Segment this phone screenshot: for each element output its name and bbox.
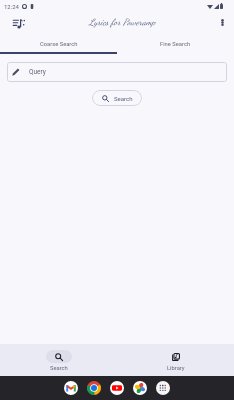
button[interactable]: Search bbox=[92, 90, 142, 106]
button[interactable]: Photos bbox=[133, 381, 147, 395]
button[interactable]: More options bbox=[212, 14, 232, 34]
staticText: Lyrics for Poweramp bbox=[89, 17, 156, 28]
button[interactable]: Gmail bbox=[64, 381, 78, 395]
button[interactable]: Library bbox=[117, 344, 234, 376]
button[interactable]: Chrome bbox=[87, 381, 101, 395]
staticText: Search bbox=[50, 365, 68, 372]
button[interactable]: Fine Search bbox=[117, 36, 234, 52]
staticText: Fine Search bbox=[160, 41, 191, 48]
button[interactable]: All apps bbox=[156, 381, 170, 395]
button[interactable]: Query bbox=[7, 62, 227, 82]
staticText: Coarse Search bbox=[40, 41, 78, 48]
staticText: Library bbox=[167, 365, 185, 372]
staticText: Query bbox=[29, 68, 46, 76]
button[interactable]: Lyrics queue bbox=[7, 12, 31, 36]
button[interactable]: YouTube bbox=[110, 381, 124, 395]
button[interactable]: Search bbox=[0, 344, 117, 376]
button[interactable]: Coarse Search bbox=[0, 36, 117, 52]
staticText: Search bbox=[114, 95, 133, 102]
staticText: 12:24 bbox=[4, 3, 19, 10]
